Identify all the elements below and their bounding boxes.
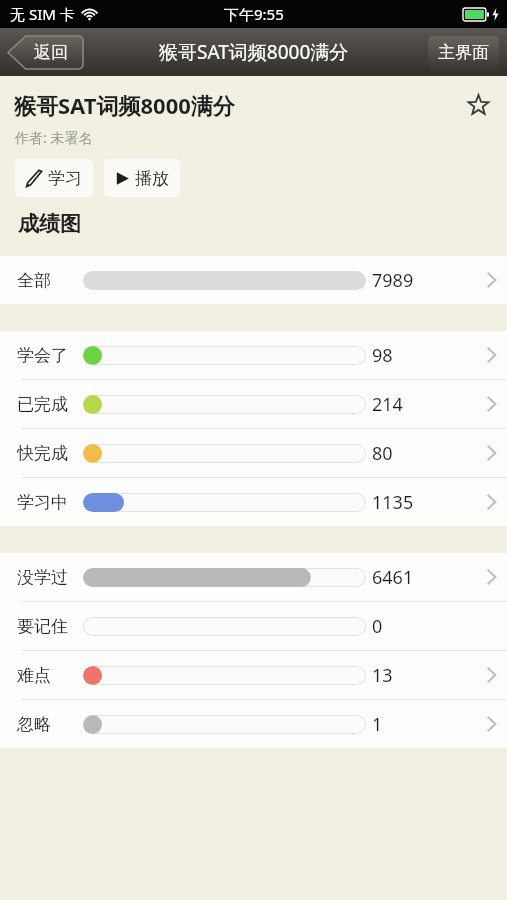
staticText: 学习中	[17, 492, 68, 513]
staticText: 学习	[48, 168, 82, 189]
button[interactable]: 学会了	[0, 331, 507, 379]
button[interactable]: 难点	[0, 651, 507, 699]
staticText: 98	[372, 343, 393, 368]
staticText: 作者: 未署名	[15, 128, 93, 147]
staticText: 214	[372, 392, 403, 417]
staticText: 7989	[372, 268, 414, 293]
staticText: 难点	[17, 665, 51, 686]
staticText: 播放	[135, 168, 169, 189]
staticText: 1	[372, 712, 383, 737]
button[interactable]: 没学过	[0, 553, 507, 601]
staticText: 返回	[34, 42, 68, 63]
staticText: 80	[372, 441, 393, 466]
staticText: 快完成	[17, 443, 68, 464]
button[interactable]: 快完成	[0, 429, 507, 477]
staticText: 成绩图	[18, 211, 81, 237]
staticText: 全部	[17, 270, 51, 291]
button[interactable]: 已完成	[0, 380, 507, 428]
button[interactable]: 主界面	[428, 36, 499, 69]
staticText: 0	[372, 614, 383, 639]
staticText: 没学过	[17, 567, 68, 588]
button[interactable]: 返回	[7, 36, 83, 69]
staticText: 下午9:55	[224, 4, 284, 24]
staticText: 无 SIM 卡	[10, 4, 75, 24]
button[interactable]: 要记住	[0, 602, 507, 650]
staticText: 猴哥SAT词频8000满分	[14, 90, 235, 120]
button[interactable]: 学习	[15, 159, 93, 197]
staticText: 忽略	[17, 714, 51, 735]
button[interactable]: 学习中	[0, 478, 507, 526]
staticText: 主界面	[438, 42, 489, 63]
staticText: 已完成	[17, 394, 68, 415]
staticText: 要记住	[17, 616, 68, 637]
staticText: 6461	[372, 565, 414, 590]
button[interactable]: 播放	[104, 159, 180, 197]
button[interactable]: 全部	[0, 256, 507, 304]
button[interactable]: Favorite	[463, 90, 493, 120]
staticText: 13	[372, 663, 393, 688]
staticText: 猴哥SAT词频8000满分	[159, 39, 349, 65]
staticText: 1135	[372, 490, 414, 515]
staticText: 学会了	[17, 345, 68, 366]
button[interactable]: 忽略	[0, 700, 507, 748]
